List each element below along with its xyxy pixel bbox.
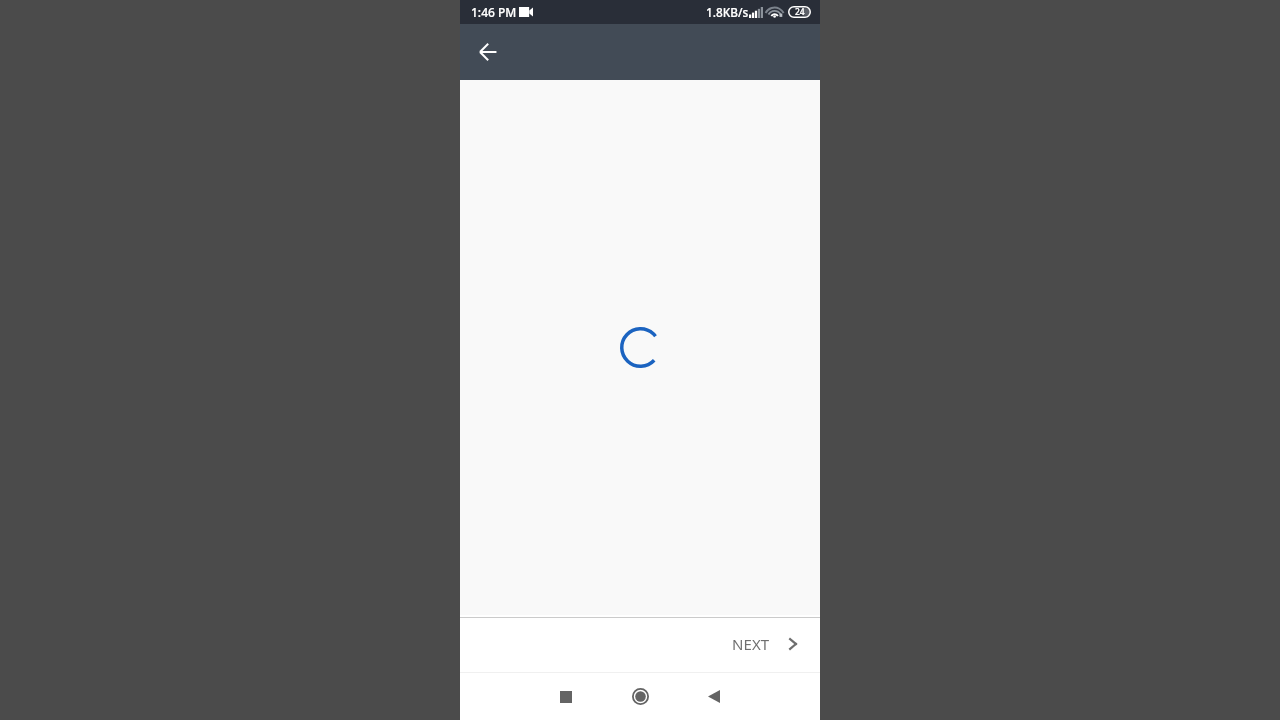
staticText: 24 xyxy=(795,6,805,18)
button[interactable]: Recent apps xyxy=(543,673,589,720)
button[interactable]: Back xyxy=(691,673,737,720)
button[interactable]: Back xyxy=(468,32,508,72)
staticText: 1:46 PM xyxy=(471,4,517,20)
button[interactable]: NEXT xyxy=(716,626,820,665)
button[interactable]: Home xyxy=(617,673,663,720)
staticText: 1.8KB/s xyxy=(706,4,749,20)
staticText: NEXT xyxy=(732,634,770,654)
